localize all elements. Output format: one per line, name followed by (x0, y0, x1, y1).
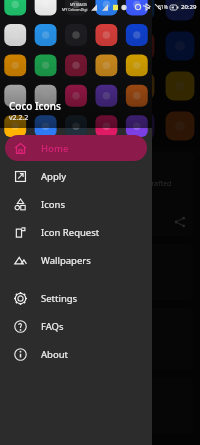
button[interactable]: Apply (5, 163, 147, 189)
staticText: About (41, 348, 68, 361)
button[interactable]: Coco another 1200 pixels icon (6, 308, 194, 370)
staticText: 20:29 (181, 3, 197, 11)
staticText: 61% (158, 4, 168, 11)
staticText: Apply (41, 170, 67, 183)
button[interactable]: FAQs (5, 313, 147, 339)
staticText: FAQs (41, 320, 64, 333)
staticText: Latest development feedback (14, 252, 128, 263)
staticText: Icon Request (41, 226, 100, 239)
staticText: A fresh icon pack with hundreds of hand … (14, 179, 186, 199)
button[interactable]: Icons (5, 191, 147, 217)
button[interactable]: Settings (5, 285, 147, 311)
staticText: v2.2.2 (9, 113, 29, 123)
button[interactable]: Home (5, 135, 147, 161)
button[interactable]: About (5, 341, 147, 367)
staticText: Coco Icons (14, 160, 73, 175)
staticText: Settings (41, 292, 78, 305)
button[interactable]: Share (174, 216, 186, 228)
staticText: Coco Icons (9, 99, 61, 113)
staticText: Wallpapers (41, 254, 91, 267)
staticText: MY MAXIS (70, 2, 88, 7)
staticText: Home (41, 142, 69, 155)
staticText: Coco another 1200 pixels icon (14, 316, 128, 327)
staticText: MY CelcomDigi (62, 7, 88, 12)
staticText: Icons (41, 198, 65, 211)
button[interactable]: Wallpapers (5, 247, 147, 273)
button[interactable]: Latest development feedback (6, 244, 194, 300)
button[interactable]: Cloud wallpapers (6, 378, 194, 434)
button[interactable]: Icon Request (5, 219, 147, 245)
button[interactable]: Coco Icons (6, 152, 194, 236)
